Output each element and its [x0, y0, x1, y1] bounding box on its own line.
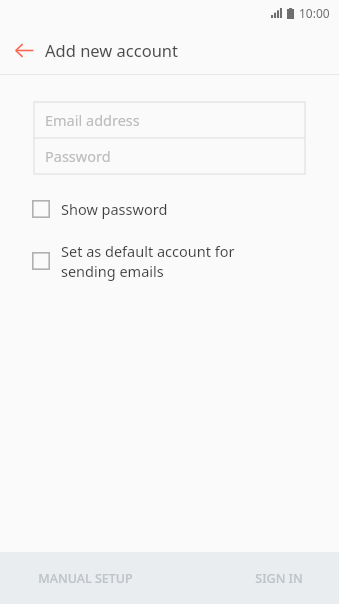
button[interactable]: Show password	[0, 195, 339, 223]
button[interactable]: MANUAL SETUP	[0, 552, 171, 604]
button[interactable]: Password	[34, 138, 305, 174]
button[interactable]: SIGN IN	[219, 552, 339, 604]
button[interactable]: Email address	[34, 102, 305, 138]
button[interactable]: Back	[8, 34, 40, 66]
staticText: Password	[45, 146, 111, 166]
staticText: SIGN IN	[255, 570, 303, 587]
staticText: 10:00	[299, 5, 330, 21]
staticText: Email address	[45, 110, 140, 130]
staticText: Set as default account for sending email…	[61, 241, 235, 281]
staticText: Add new account	[45, 39, 178, 61]
button[interactable]: Set as default account for sending email…	[0, 237, 339, 285]
staticText: MANUAL SETUP	[38, 570, 133, 587]
staticText: Show password	[61, 199, 168, 219]
